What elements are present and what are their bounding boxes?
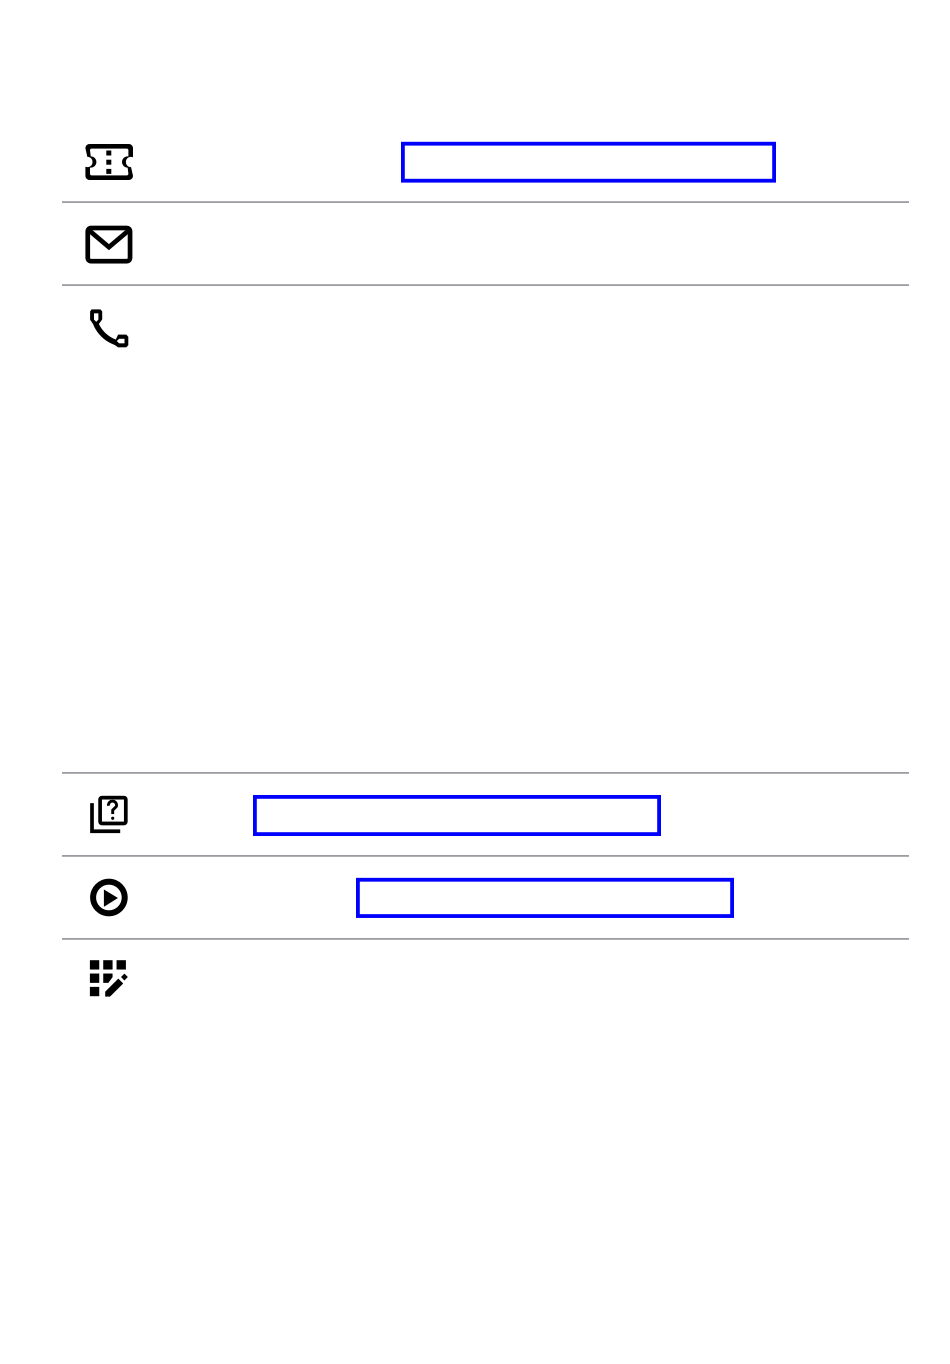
button[interactable]: Tickets — [0, 120, 950, 201]
button[interactable]: Keypad — [0, 940, 950, 1021]
button[interactable]: Help — [0, 774, 950, 855]
button[interactable]: Call — [0, 286, 950, 367]
button[interactable]: Watch — [0, 857, 950, 938]
button[interactable]: Email — [0, 203, 950, 284]
